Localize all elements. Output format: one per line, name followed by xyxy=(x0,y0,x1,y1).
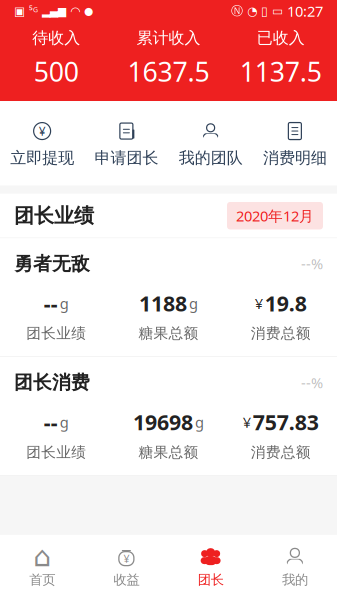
staticText: ▣ xyxy=(14,4,25,18)
staticText: --% xyxy=(301,254,323,273)
staticText: 待收入 xyxy=(32,28,80,48)
button[interactable]: 团长 xyxy=(168,540,253,594)
staticText: 团长消费 xyxy=(14,371,90,394)
staticText: 19.8 xyxy=(265,289,307,317)
staticText: 团长业绩 xyxy=(26,443,86,461)
staticText: 团长 xyxy=(198,572,224,588)
staticText: 消费总额 xyxy=(251,324,311,342)
staticText: 糖果总额 xyxy=(138,443,198,461)
staticText: 1188 xyxy=(139,289,187,317)
staticText: 19698 xyxy=(133,408,193,436)
staticText: g xyxy=(189,294,198,313)
button[interactable]: 消费明细 xyxy=(253,115,337,174)
staticText: Ⓝ xyxy=(231,4,243,18)
staticText: 消费总额 xyxy=(251,443,311,461)
staticText: 勇者无敌 xyxy=(14,252,90,275)
staticText: 我的 xyxy=(282,572,308,588)
button[interactable]: 我的团队 xyxy=(168,115,253,174)
staticText: ⁵ᴳ xyxy=(29,4,38,18)
staticText: 757.83 xyxy=(253,408,319,436)
staticText: ¥ xyxy=(39,123,46,139)
staticText: ⌂ xyxy=(33,541,51,572)
button[interactable]: ¥ xyxy=(0,115,84,174)
staticText: 10:27 xyxy=(287,1,323,21)
button[interactable]: ⌂ xyxy=(0,540,84,594)
button[interactable]: 我的 xyxy=(253,540,337,594)
staticText: ¥ xyxy=(255,294,263,313)
staticText: ● xyxy=(84,5,93,17)
staticText: ◔ xyxy=(247,4,257,18)
staticText: 申请团长 xyxy=(94,148,158,168)
staticText: g xyxy=(60,412,69,432)
button[interactable]: 申请团长 xyxy=(84,115,168,174)
staticText: g xyxy=(195,412,204,432)
staticText: 1637.5 xyxy=(127,54,209,89)
staticText: 收益 xyxy=(113,572,139,588)
staticText: 首页 xyxy=(29,572,55,588)
staticText: 累计收入 xyxy=(136,28,200,48)
button[interactable]: ¥ xyxy=(84,540,168,594)
staticText: 立即提现 xyxy=(10,148,74,168)
staticText: 500 xyxy=(34,54,79,89)
staticText: 已收入 xyxy=(257,28,305,48)
staticText: ▂▄▆ xyxy=(42,5,66,17)
staticText: ▯ xyxy=(261,4,268,18)
staticText: -- xyxy=(44,289,58,317)
staticText: ¥ xyxy=(123,551,129,566)
staticText: 1137.5 xyxy=(240,54,322,89)
staticText: 糖果总额 xyxy=(138,324,198,342)
staticText: ¥ xyxy=(243,412,251,432)
staticText: ▭ xyxy=(272,4,283,18)
staticText: 消费明细 xyxy=(263,148,327,168)
staticText: 团长业绩 xyxy=(26,324,86,342)
staticText: ◠ xyxy=(70,4,80,18)
staticText: 团长业绩 xyxy=(14,203,94,228)
staticText: 我的团队 xyxy=(179,148,243,168)
staticText: -- xyxy=(44,408,58,436)
staticText: --% xyxy=(301,373,323,392)
staticText: 2020年12月 xyxy=(236,206,314,225)
staticText: g xyxy=(60,294,69,313)
